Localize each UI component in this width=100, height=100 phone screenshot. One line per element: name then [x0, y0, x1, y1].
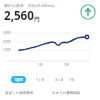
button[interactable]: 1週間 [11, 76, 26, 83]
staticText: 3ヶ月 [55, 77, 64, 82]
button[interactable]: 3ヶ月 [52, 76, 67, 83]
button[interactable]: 1年 [66, 76, 78, 83]
button[interactable]: 今までの運用損益 [52, 89, 81, 97]
staticText: 2024年01月08日時点 [28, 4, 55, 8]
staticText: 円 [34, 16, 40, 23]
staticText: 2,560 [4, 8, 34, 24]
button[interactable]: 詳細を見る [80, 4, 96, 20]
staticText: 1/8 [64, 63, 69, 67]
button[interactable]: 直近した残高推移 [5, 89, 34, 97]
staticText: 3,000 [3, 31, 11, 35]
staticText: 累計の残高 [4, 3, 24, 8]
staticText: 1ヶ月 [36, 77, 45, 82]
staticText: 2,000 [3, 40, 11, 44]
staticText: 今までの運用損益 [52, 91, 81, 95]
staticText: 直近した残高推移 [5, 91, 34, 95]
staticText: 1週間 [14, 77, 23, 82]
staticText: 1/4 [38, 63, 43, 67]
staticText: 1,000 [3, 48, 11, 52]
button[interactable]: 1ヶ月 [33, 76, 48, 83]
staticText: 1年 [69, 77, 75, 82]
